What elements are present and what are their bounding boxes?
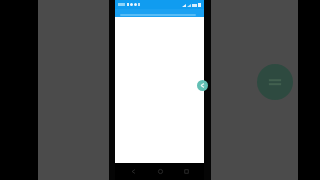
button[interactable]: Home: [151, 163, 169, 180]
button[interactable]: Open side panel: [197, 80, 208, 91]
button[interactable]: Recent apps: [177, 163, 195, 180]
button[interactable]: Back: [124, 163, 142, 180]
